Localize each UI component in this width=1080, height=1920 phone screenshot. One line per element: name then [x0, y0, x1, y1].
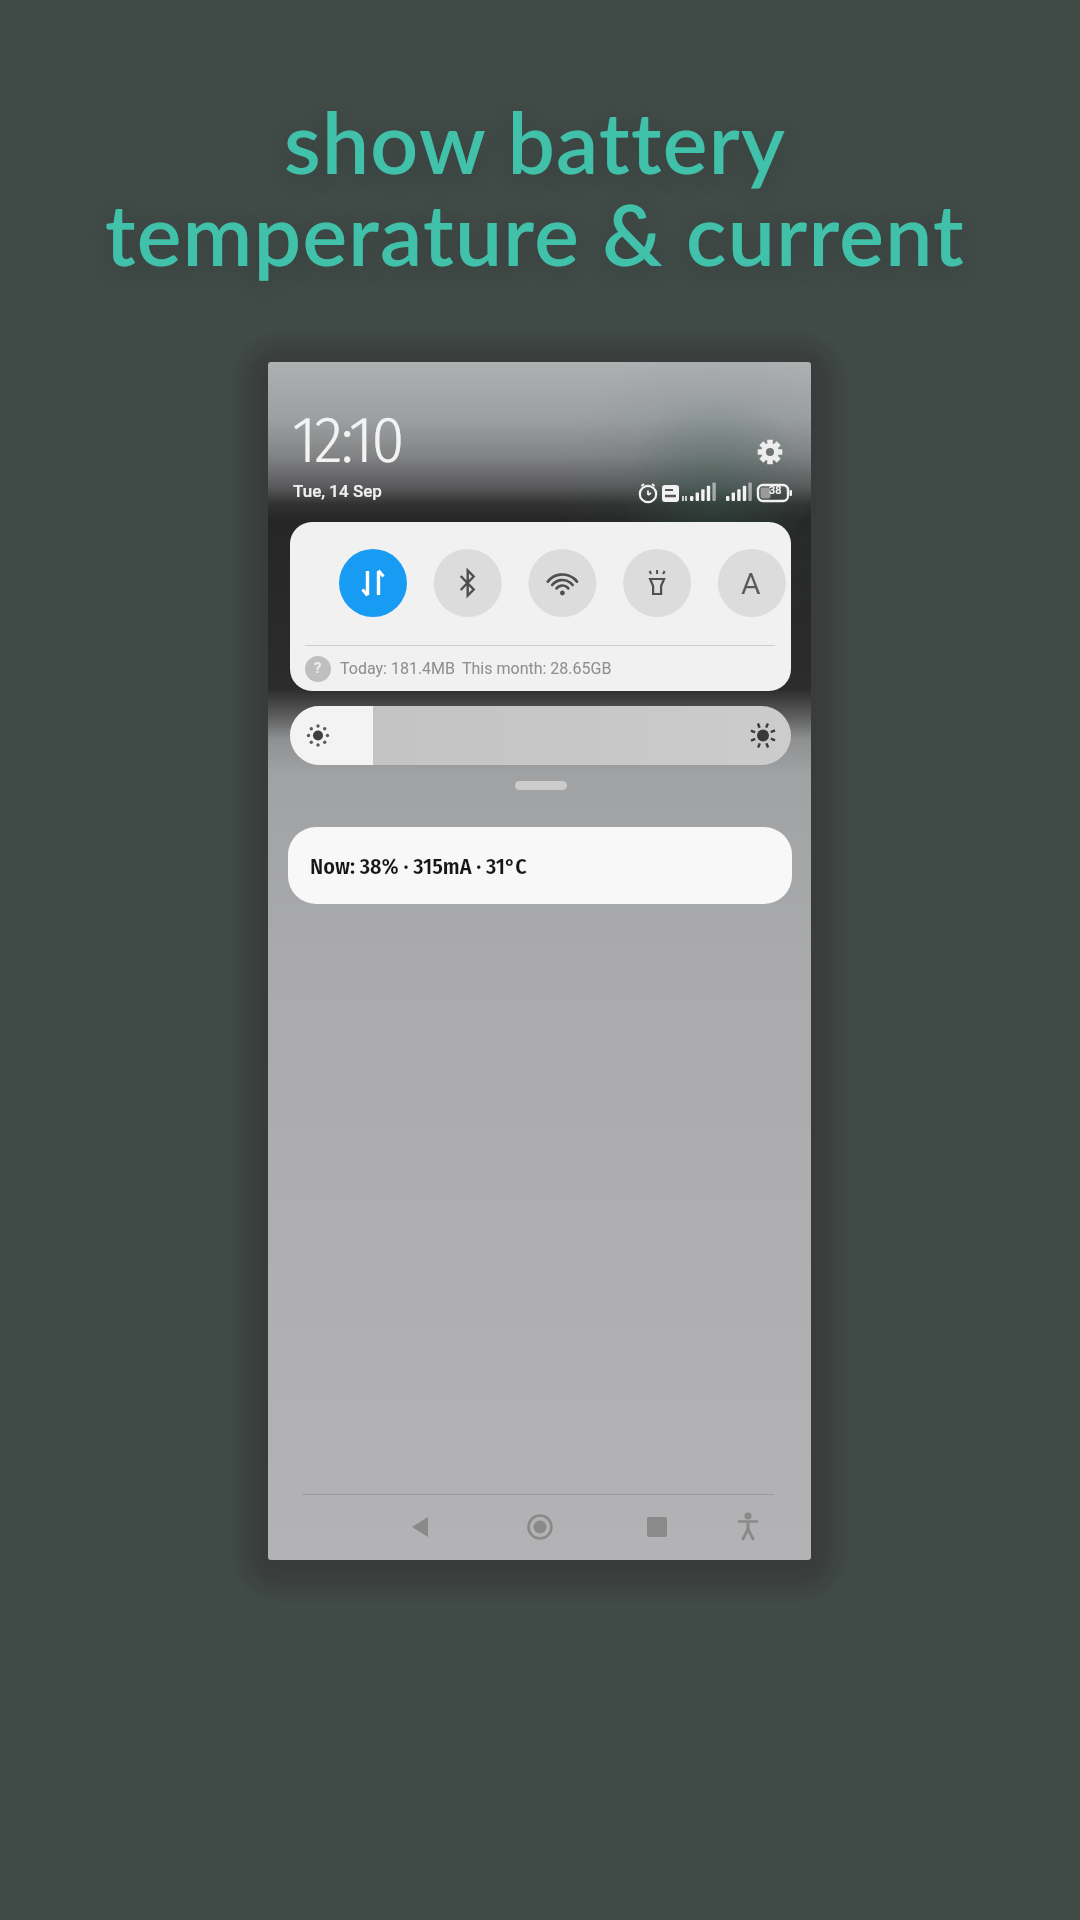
staticText: 12:10 [292, 400, 403, 479]
button[interactable] [290, 706, 791, 765]
button[interactable] [515, 781, 567, 790]
button[interactable] [393, 1501, 447, 1557]
button[interactable] [718, 549, 786, 617]
button[interactable] [528, 549, 596, 617]
button[interactable] [630, 1501, 684, 1557]
staticText: 38 [769, 484, 782, 497]
button[interactable] [339, 549, 407, 617]
staticText: Today: 181.4MB [340, 659, 456, 678]
staticText: This month: 28.65GB [462, 659, 612, 678]
button[interactable] [303, 652, 778, 686]
staticText: ? [314, 659, 322, 677]
staticText: A [741, 566, 761, 601]
staticText: Now: 38% · 315mA · 31°C [310, 853, 527, 879]
button[interactable] [623, 549, 691, 617]
button[interactable] [434, 549, 502, 617]
staticText: Tue, 14 Sep [293, 481, 382, 501]
button[interactable]: Now: 38% · 315mA · 31°C [288, 827, 792, 904]
button[interactable] [513, 1501, 567, 1557]
staticText: show battery temperature & current [105, 91, 965, 284]
button[interactable] [721, 1501, 775, 1557]
button[interactable] [756, 438, 784, 466]
